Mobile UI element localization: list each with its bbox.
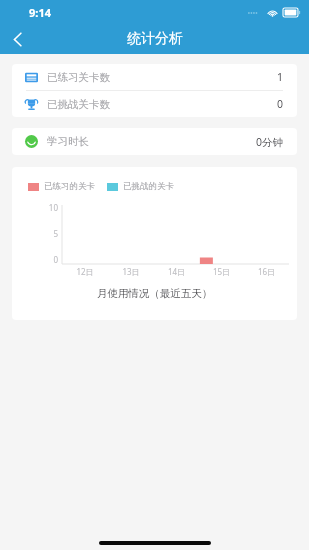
staticText: 16日 <box>244 266 289 277</box>
staticText: 已挑战关卡数 <box>47 98 110 111</box>
staticText: 14日 <box>154 266 199 277</box>
staticText: 月使用情况（最近五天） <box>12 287 297 300</box>
button[interactable]: 已挑战关卡数 <box>12 91 297 117</box>
staticText: 统计分析 <box>127 30 183 48</box>
staticText: 0分钟 <box>256 135 284 149</box>
staticText: 9:14 <box>29 5 51 20</box>
staticText: 已练习的关卡 <box>44 181 95 192</box>
button[interactable]: 已练习关卡数 <box>12 64 297 90</box>
staticText: 10 <box>12 202 58 213</box>
button[interactable]: 学习时长 <box>12 128 297 155</box>
staticText: 已挑战的关卡 <box>123 181 174 192</box>
staticText: 13日 <box>108 266 154 277</box>
staticText: 0 <box>277 97 284 111</box>
staticText: 15日 <box>199 266 244 277</box>
staticText: 5 <box>12 228 58 239</box>
staticText: 学习时长 <box>47 135 89 148</box>
staticText: 12日 <box>62 266 108 277</box>
staticText: 0 <box>12 254 58 265</box>
button[interactable]: Back <box>0 24 34 54</box>
staticText: 已练习关卡数 <box>47 71 110 84</box>
staticText: 1 <box>277 70 284 84</box>
